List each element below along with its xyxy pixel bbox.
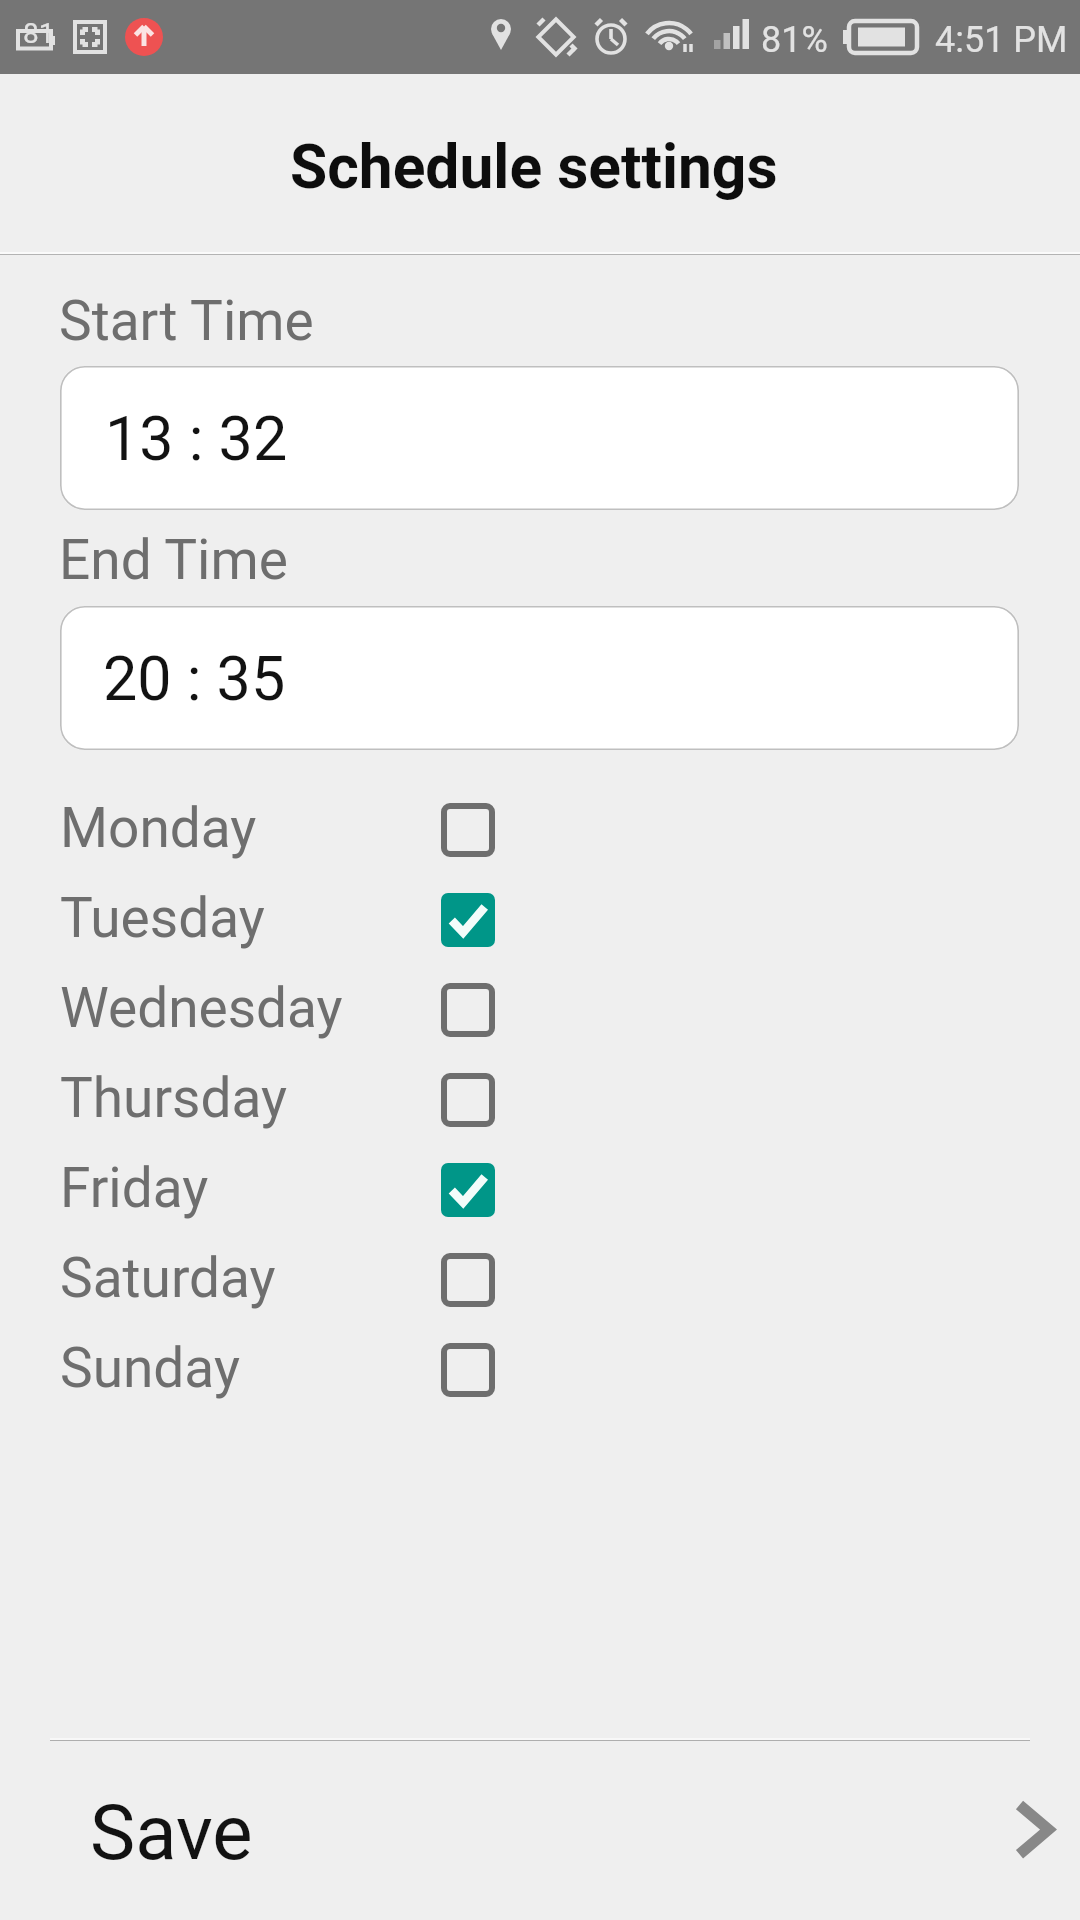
button[interactable]: Save	[0, 1741, 1080, 1920]
staticText: 13 : 32	[105, 403, 288, 474]
staticText: 81	[23, 17, 55, 50]
staticText: Sunday	[60, 1336, 240, 1400]
staticText: Saturday	[60, 1246, 276, 1310]
button[interactable]: Start time 13:32	[60, 366, 1019, 510]
button[interactable]: Save	[985, 1763, 1075, 1853]
button[interactable]: Wednesday	[0, 967, 1080, 1057]
staticText: Thursday	[60, 1066, 288, 1130]
button[interactable]: Saturday	[0, 1237, 1080, 1327]
button[interactable]: Wednesday not selected	[441, 983, 495, 1037]
button[interactable]: Sunday not selected	[441, 1343, 495, 1397]
button[interactable]: Tuesday	[0, 877, 1080, 967]
button[interactable]: Saturday not selected	[441, 1253, 495, 1307]
staticText: Schedule settings	[290, 132, 778, 203]
staticText: Monday	[60, 796, 257, 860]
staticText: Start Time	[59, 289, 314, 353]
staticText: 81%	[761, 19, 828, 61]
button[interactable]: Friday selected	[441, 1163, 495, 1217]
button[interactable]: Monday not selected	[441, 803, 495, 857]
staticText: Friday	[60, 1156, 209, 1220]
button[interactable]: End time 20:35	[60, 606, 1019, 750]
staticText: Tuesday	[60, 886, 265, 950]
button[interactable]: Thursday	[0, 1057, 1080, 1147]
staticText: 4:51 PM	[935, 19, 1068, 61]
button[interactable]: Schedule settings	[0, 74, 1080, 254]
button[interactable]: Tuesday selected	[441, 893, 495, 947]
staticText: 20 : 35	[103, 643, 286, 714]
button[interactable]: Sunday	[0, 1327, 1080, 1417]
button[interactable]: Monday	[0, 787, 1080, 877]
button[interactable]: Thursday not selected	[441, 1073, 495, 1127]
staticText: End Time	[59, 528, 288, 592]
staticText: Wednesday	[60, 976, 343, 1040]
staticText: Save	[90, 1788, 253, 1877]
button[interactable]: Friday	[0, 1147, 1080, 1237]
